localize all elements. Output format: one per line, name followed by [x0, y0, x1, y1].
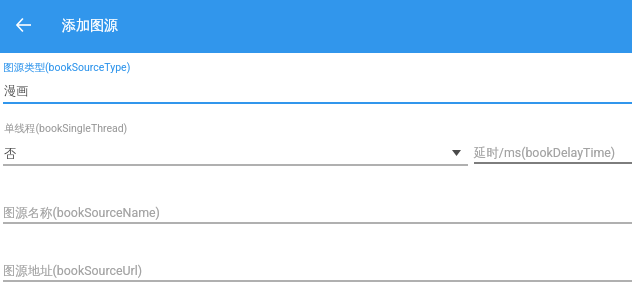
staticText: 图源地址(bookSourceUrl): [3, 263, 143, 279]
button[interactable]: Navigate up: [1, 3, 45, 47]
button[interactable]: 图源名称(bookSourceName): [0, 198, 632, 226]
staticText: 图源类型(bookSourceType): [3, 61, 131, 74]
staticText: 图源名称(bookSourceName): [3, 205, 160, 221]
staticText: 否: [4, 146, 17, 161]
staticText: 单线程(bookSingleThread): [4, 122, 128, 135]
staticText: 延时/ms(bookDelayTime): [474, 145, 616, 161]
staticText: 添加图源: [62, 17, 118, 35]
button[interactable]: 单线程(bookSingleThread): [0, 117, 471, 166]
button[interactable]: 图源地址(bookSourceUrl): [0, 256, 632, 284]
button[interactable]: 图源类型(bookSourceType): [0, 56, 632, 104]
staticText: 漫画: [4, 83, 29, 98]
button[interactable]: 延时/ms(bookDelayTime): [471, 130, 632, 164]
